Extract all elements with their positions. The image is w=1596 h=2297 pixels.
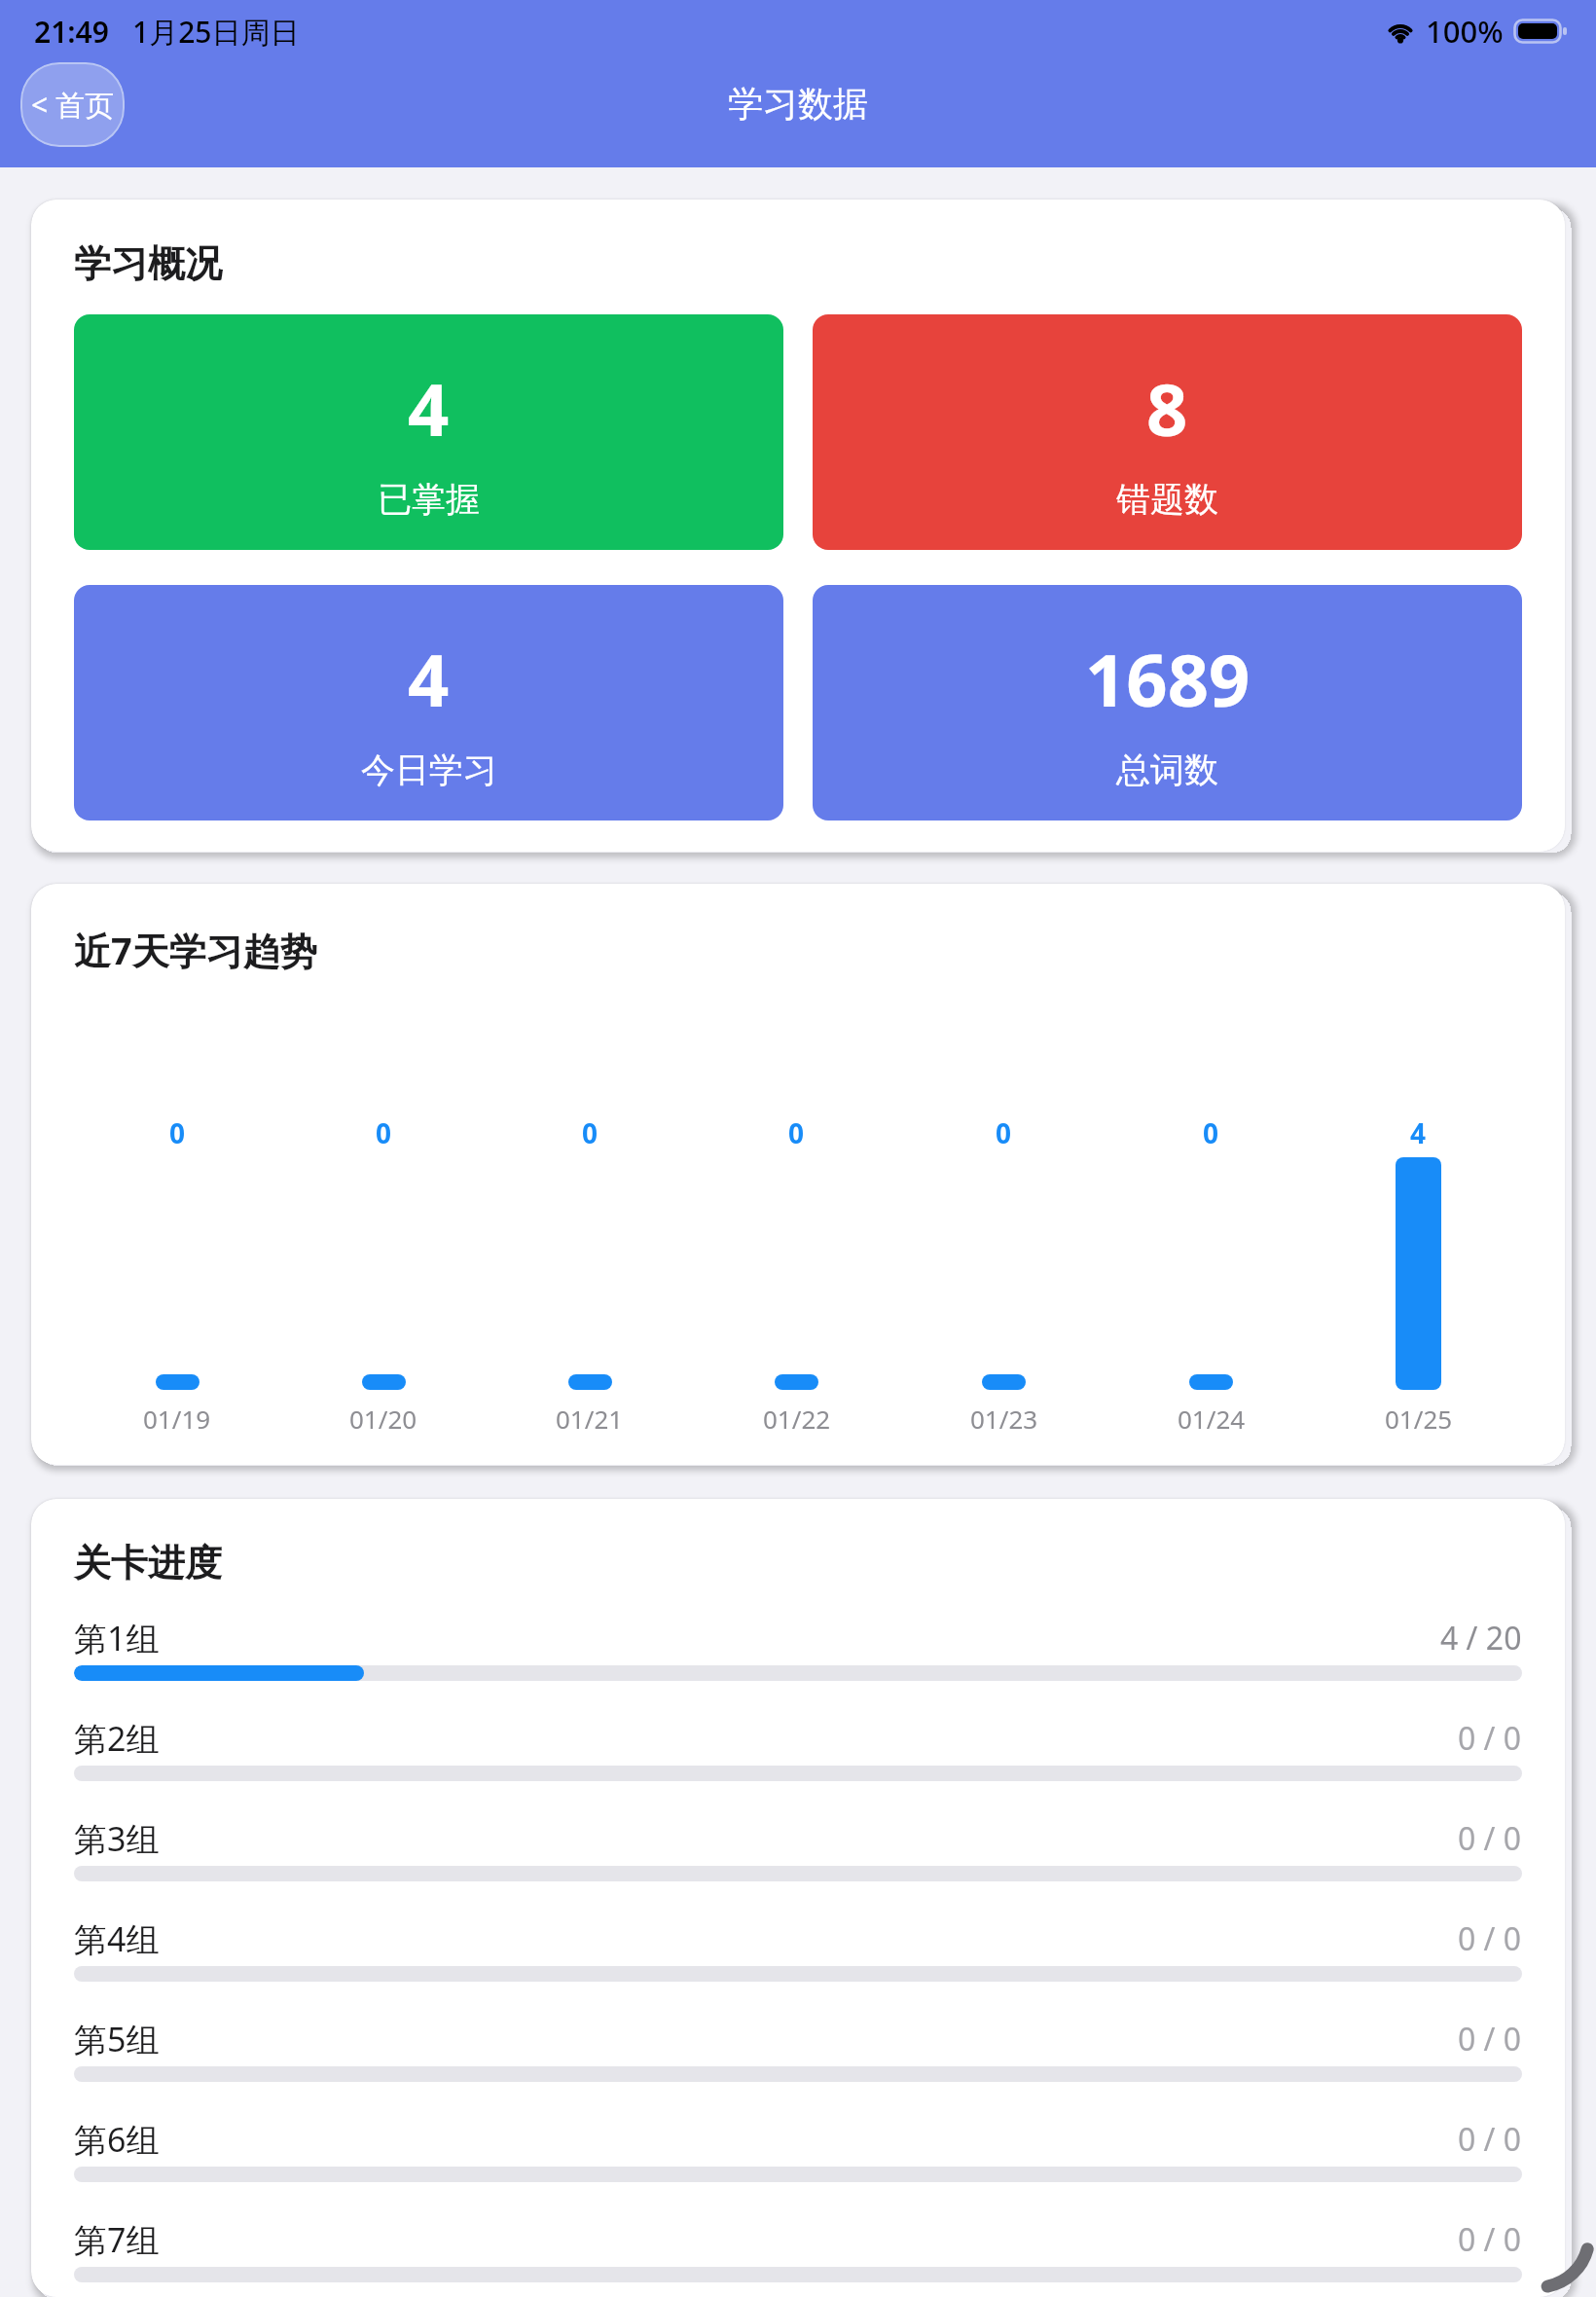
staticText: 关卡进度 [74, 1540, 222, 1586]
staticText: 第7组 [74, 2217, 160, 2262]
staticText: 01/20 [349, 1402, 417, 1436]
staticText: 01/23 [970, 1402, 1038, 1436]
staticText: 8 [1146, 359, 1188, 457]
staticText: 0 [376, 1114, 392, 1151]
staticText: 1月25日周日 [132, 12, 300, 52]
staticText: 21:49 [34, 12, 109, 52]
staticText: 0 [996, 1114, 1012, 1151]
button[interactable]: < 首页 [20, 62, 125, 147]
staticText: 第1组 [74, 1616, 160, 1660]
staticText: 0 [582, 1114, 598, 1151]
staticText: 01/19 [143, 1402, 211, 1436]
staticText: 4 [1410, 1114, 1427, 1151]
staticText: 0 [1203, 1114, 1219, 1151]
staticText: 第2组 [74, 1716, 160, 1761]
staticText: 0 / 0 [1458, 1917, 1522, 1960]
button[interactable]: 第2组 [74, 1716, 1522, 1761]
staticText: 0 / 0 [1458, 2218, 1522, 2261]
staticText: 0 [788, 1114, 805, 1151]
staticText: 0 / 0 [1458, 2018, 1522, 2060]
staticText: 4 [408, 630, 450, 728]
button[interactable]: 第6组 [74, 2117, 1522, 2162]
staticText: 1689 [1085, 630, 1251, 728]
staticText: 01/24 [1178, 1402, 1246, 1436]
staticText: 100% [1426, 11, 1504, 52]
staticText: 4 / 20 [1440, 1617, 1522, 1659]
button[interactable]: 第5组 [74, 2017, 1522, 2061]
staticText: 4 [408, 359, 450, 457]
staticText: 01/22 [763, 1402, 831, 1436]
button[interactable]: 第1组 [74, 1616, 1522, 1660]
staticText: 已掌握 [378, 478, 480, 521]
staticText: < 首页 [31, 85, 114, 125]
staticText: 第6组 [74, 2117, 160, 2162]
staticText: 0 [169, 1114, 186, 1151]
staticText: 01/21 [556, 1402, 624, 1436]
staticText: 总词数 [1116, 748, 1218, 791]
staticText: 第4组 [74, 1916, 160, 1961]
button[interactable]: 第3组 [74, 1816, 1522, 1861]
staticText: 近7天学习趋势 [74, 925, 317, 975]
staticText: 第5组 [74, 2017, 160, 2061]
staticText: 第3组 [74, 1816, 160, 1861]
button[interactable]: 4 [74, 314, 783, 550]
staticText: 0 / 0 [1458, 1717, 1522, 1760]
button[interactable]: 第4组 [74, 1916, 1522, 1961]
staticText: 错题数 [1116, 478, 1218, 521]
staticText: 0 / 0 [1458, 1817, 1522, 1860]
staticText: 学习概况 [74, 240, 222, 287]
staticText: 学习数据 [728, 82, 868, 126]
staticText: 0 / 0 [1458, 2118, 1522, 2161]
button[interactable]: 8 [813, 314, 1522, 550]
button[interactable]: 第7组 [74, 2217, 1522, 2262]
button[interactable]: 1689 [813, 585, 1522, 820]
button[interactable]: 4 [74, 585, 783, 820]
staticText: 01/25 [1385, 1402, 1453, 1436]
staticText: 今日学习 [361, 748, 497, 791]
